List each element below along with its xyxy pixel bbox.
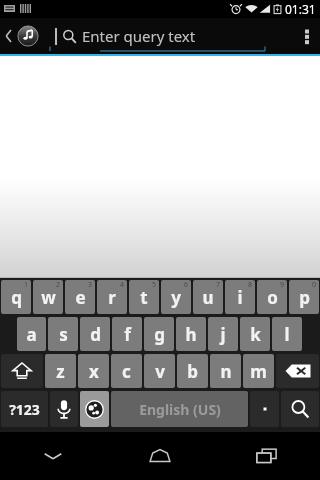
button[interactable]: h <box>176 317 206 351</box>
staticText: e <box>75 286 86 309</box>
button[interactable]: Home <box>106 432 213 480</box>
staticText: h <box>185 323 197 346</box>
button[interactable]: ?123 <box>1 391 48 427</box>
staticText: 8 <box>248 280 253 290</box>
staticText: w <box>41 286 56 309</box>
staticText: l <box>284 323 290 346</box>
staticText: q <box>11 286 22 309</box>
staticText: c <box>122 360 131 383</box>
staticText: ?123 <box>9 400 40 419</box>
button[interactable]: e <box>65 280 95 314</box>
staticText: x <box>89 360 99 383</box>
staticText: j <box>220 323 226 346</box>
staticText: m <box>250 360 267 383</box>
staticText: f <box>124 323 131 346</box>
staticText: g <box>154 323 165 346</box>
button[interactable]: Recent apps <box>213 432 320 480</box>
staticText: z <box>56 360 65 383</box>
button[interactable]: s <box>48 317 78 351</box>
staticText: 3 <box>88 280 93 290</box>
staticText: 2 <box>56 280 61 290</box>
staticText: o <box>267 286 278 309</box>
button[interactable]: Change language <box>80 391 109 427</box>
button[interactable]: k <box>240 317 270 351</box>
button[interactable]: f <box>112 317 142 351</box>
staticText: i <box>237 286 243 309</box>
staticText: v <box>155 360 165 383</box>
staticText: 1 <box>24 280 29 290</box>
button[interactable]: Shift <box>1 354 43 388</box>
button[interactable]: v <box>144 354 175 388</box>
staticText: 9 <box>280 280 285 290</box>
staticText: n <box>220 360 232 383</box>
button[interactable]: j <box>208 317 238 351</box>
button[interactable]: q <box>1 280 31 314</box>
button[interactable]: More options <box>294 18 320 54</box>
button[interactable]: y <box>161 280 191 314</box>
staticText: p <box>299 286 310 309</box>
staticText: 6 <box>184 280 189 290</box>
button[interactable]: n <box>210 354 241 388</box>
staticText: u <box>202 286 214 309</box>
button[interactable]: u <box>193 280 223 314</box>
staticText: a <box>26 323 37 346</box>
button[interactable]: p <box>289 280 319 314</box>
staticText: t <box>140 286 148 309</box>
staticText: r <box>108 286 116 309</box>
staticText: 7 <box>216 280 221 290</box>
staticText: y <box>171 286 181 309</box>
button[interactable]: Navigate up <box>0 18 50 54</box>
button[interactable]: English (US) <box>111 391 248 427</box>
staticText: 0 <box>312 280 317 290</box>
button[interactable]: a <box>17 317 46 351</box>
button[interactable]: d <box>80 317 110 351</box>
button[interactable]: Voice input <box>50 391 78 427</box>
button[interactable]: Hide keyboard <box>0 432 106 480</box>
button[interactable]: t <box>129 280 159 314</box>
button[interactable]: Search <box>281 391 319 427</box>
staticText: 5 <box>152 280 157 290</box>
button[interactable]: w <box>33 280 63 314</box>
button[interactable]: o <box>257 280 287 314</box>
button[interactable]: c <box>111 354 142 388</box>
staticText: 01:31 <box>285 1 316 17</box>
staticText: d <box>90 323 101 346</box>
button[interactable]: z <box>45 354 76 388</box>
button[interactable]: r <box>97 280 127 314</box>
staticText: 4 <box>120 280 125 290</box>
button[interactable]: x <box>78 354 109 388</box>
button[interactable]: i <box>225 280 255 314</box>
staticText: k <box>250 323 261 346</box>
button[interactable]: b <box>177 354 208 388</box>
button[interactable]: l <box>272 317 302 351</box>
button[interactable]: Period <box>250 391 279 427</box>
staticText: English (US) <box>139 400 221 419</box>
button[interactable]: m <box>243 354 274 388</box>
staticText: Enter query text <box>82 26 196 46</box>
button[interactable]: Delete <box>276 354 319 388</box>
staticText: b <box>187 360 198 383</box>
staticText: s <box>59 323 68 346</box>
button[interactable]: g <box>144 317 174 351</box>
button[interactable]: Enter query text <box>55 18 196 54</box>
